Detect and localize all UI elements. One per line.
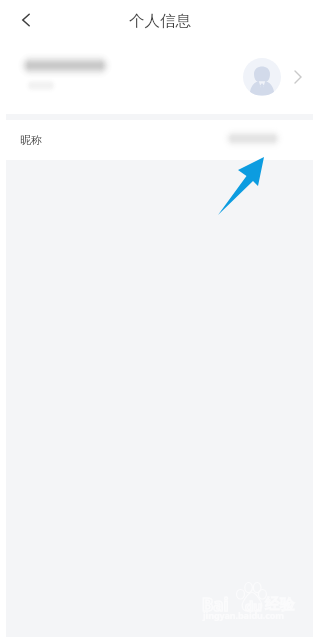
staticText: 昵称 bbox=[20, 133, 42, 147]
button[interactable]: Back bbox=[10, 4, 42, 36]
staticText: 个人信息 bbox=[129, 11, 191, 31]
button[interactable]: 昵称 bbox=[6, 120, 313, 160]
button[interactable] bbox=[6, 40, 313, 114]
